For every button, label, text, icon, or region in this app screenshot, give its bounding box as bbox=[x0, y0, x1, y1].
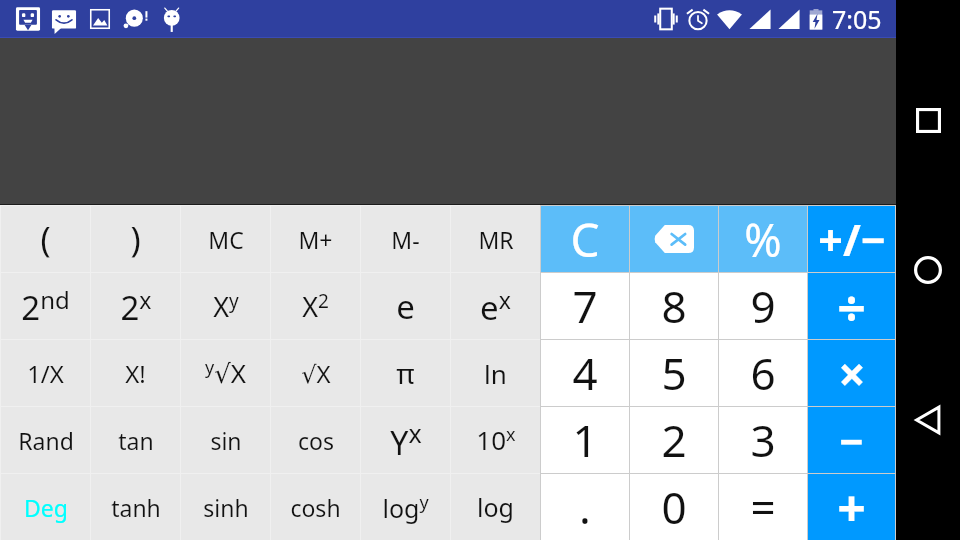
button[interactable]: 2x bbox=[90, 272, 180, 339]
button[interactable]: 1 bbox=[540, 406, 629, 473]
button[interactable]: − bbox=[807, 406, 896, 473]
button[interactable]: π bbox=[360, 339, 450, 406]
staticText: Rand bbox=[18, 425, 74, 456]
button[interactable]: ÷ bbox=[807, 272, 896, 339]
staticText: 4 bbox=[572, 343, 598, 403]
staticText: 1 bbox=[572, 410, 598, 470]
staticText: . bbox=[579, 477, 591, 537]
button[interactable]: Recent apps bbox=[896, 88, 960, 152]
staticText: √X bbox=[301, 357, 331, 390]
staticText: M- bbox=[391, 224, 420, 255]
staticText: ln bbox=[484, 356, 507, 391]
staticText: 2nd bbox=[21, 283, 70, 330]
staticText: 0 bbox=[661, 477, 687, 537]
button[interactable]: M+ bbox=[270, 205, 360, 272]
button[interactable]: + bbox=[807, 473, 896, 540]
staticText: 6 bbox=[750, 343, 776, 403]
staticText: log bbox=[477, 490, 514, 524]
button[interactable]: 8 bbox=[629, 272, 718, 339]
staticText: 10x bbox=[476, 422, 516, 458]
button[interactable]: ) bbox=[90, 205, 180, 272]
button[interactable]: C bbox=[540, 205, 629, 272]
button[interactable]: Xy bbox=[180, 272, 270, 339]
staticText: ÷ bbox=[837, 273, 866, 339]
staticText: X2 bbox=[302, 288, 329, 325]
button[interactable]: MR bbox=[450, 205, 540, 272]
staticText: 7 bbox=[572, 276, 598, 336]
button[interactable]: M- bbox=[360, 205, 450, 272]
staticText: ) bbox=[130, 216, 141, 262]
staticText: ( bbox=[40, 216, 51, 262]
staticText: 2x bbox=[120, 284, 152, 329]
staticText: cos bbox=[298, 425, 334, 456]
staticText: e bbox=[396, 284, 415, 329]
button[interactable]: ex bbox=[450, 272, 540, 339]
button[interactable]: % bbox=[718, 205, 807, 272]
staticText: tan bbox=[118, 425, 154, 456]
button[interactable]: 3 bbox=[718, 406, 807, 473]
button[interactable]: ln bbox=[450, 339, 540, 406]
staticText: % bbox=[744, 209, 782, 270]
button[interactable]: Home bbox=[896, 238, 960, 302]
button[interactable]: Backspace bbox=[629, 205, 718, 272]
button[interactable]: X! bbox=[90, 339, 180, 406]
button[interactable]: sinh bbox=[180, 473, 270, 540]
button[interactable]: logy bbox=[360, 473, 450, 540]
button[interactable]: × bbox=[807, 339, 896, 406]
button[interactable]: 1/X bbox=[0, 339, 90, 406]
button[interactable]: X2 bbox=[270, 272, 360, 339]
button[interactable]: cos bbox=[270, 406, 360, 473]
staticText: C bbox=[570, 208, 600, 271]
button[interactable]: e bbox=[360, 272, 450, 339]
staticText: Yx bbox=[390, 416, 422, 464]
staticText: + bbox=[837, 474, 866, 540]
button[interactable]: = bbox=[718, 473, 807, 540]
staticText: 7:05 bbox=[832, 2, 882, 36]
button[interactable]: 7 bbox=[540, 272, 629, 339]
staticText: X! bbox=[125, 357, 146, 390]
staticText: 9 bbox=[750, 276, 776, 336]
button[interactable]: . bbox=[540, 473, 629, 540]
button[interactable]: tanh bbox=[90, 473, 180, 540]
button[interactable]: 4 bbox=[540, 339, 629, 406]
staticText: − bbox=[839, 412, 864, 469]
button[interactable]: Back bbox=[896, 388, 960, 452]
button[interactable]: tan bbox=[90, 406, 180, 473]
staticText: MC bbox=[208, 224, 244, 255]
button[interactable]: 2 bbox=[629, 406, 718, 473]
staticText: 5 bbox=[661, 343, 687, 403]
staticText: sin bbox=[210, 425, 242, 456]
staticText: 3 bbox=[750, 410, 776, 470]
button[interactable]: 6 bbox=[718, 339, 807, 406]
button[interactable]: 10x bbox=[450, 406, 540, 473]
staticText: 2 bbox=[661, 410, 687, 470]
staticText: Deg bbox=[24, 492, 68, 523]
button[interactable]: MC bbox=[180, 205, 270, 272]
button[interactable]: √X bbox=[270, 339, 360, 406]
staticText: = bbox=[750, 477, 776, 537]
button[interactable]: Deg bbox=[0, 473, 90, 540]
button[interactable]: sin bbox=[180, 406, 270, 473]
staticText: π bbox=[396, 354, 415, 392]
button[interactable]: Yx bbox=[360, 406, 450, 473]
staticText: cosh bbox=[290, 492, 341, 523]
staticText: logy bbox=[382, 490, 429, 525]
staticText: ex bbox=[480, 284, 511, 329]
button[interactable]: 0 bbox=[629, 473, 718, 540]
staticText: +/− bbox=[818, 210, 886, 269]
button[interactable]: cosh bbox=[270, 473, 360, 540]
staticText: × bbox=[838, 341, 866, 406]
button[interactable]: 5 bbox=[629, 339, 718, 406]
staticText: M+ bbox=[298, 224, 333, 255]
button[interactable]: log bbox=[450, 473, 540, 540]
button[interactable]: 9 bbox=[718, 272, 807, 339]
button[interactable]: +/− bbox=[807, 205, 896, 272]
staticText: sinh bbox=[203, 492, 249, 523]
button[interactable]: 2nd bbox=[0, 272, 90, 339]
button[interactable]: ( bbox=[0, 205, 90, 272]
staticText: MR bbox=[478, 224, 514, 255]
button[interactable]: Rand bbox=[0, 406, 90, 473]
staticText: Xy bbox=[213, 288, 239, 325]
button[interactable]: y√X bbox=[180, 339, 270, 406]
staticText: 8 bbox=[661, 276, 687, 336]
